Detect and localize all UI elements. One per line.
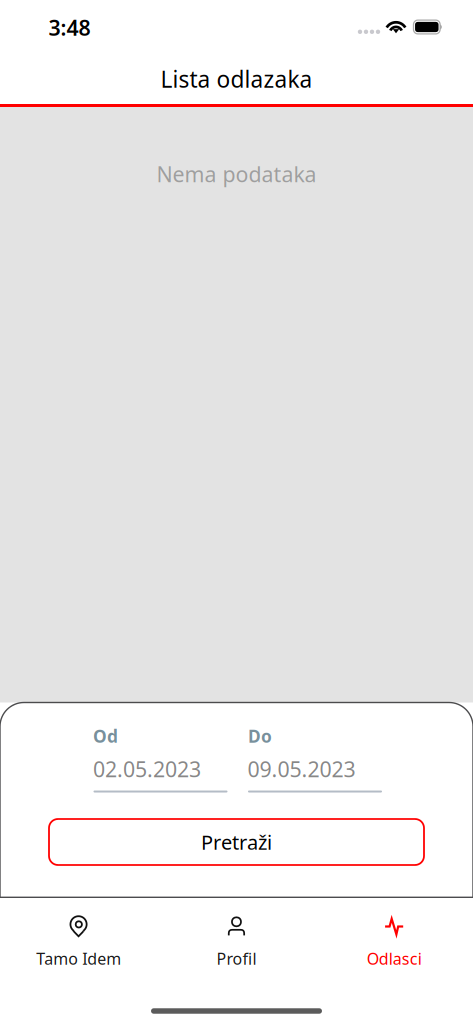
staticText: Lista odlazaka (160, 64, 312, 94)
button[interactable]: Od (93, 722, 233, 800)
staticText: 02.05.2023 (93, 755, 201, 783)
staticText: 09.05.2023 (247, 755, 355, 783)
staticText: Do (248, 724, 272, 747)
staticText: Tamo Idem (36, 948, 121, 969)
button[interactable]: Profil (158, 897, 315, 985)
button[interactable]: Do (247, 722, 387, 800)
staticText: Profil (216, 948, 256, 969)
button[interactable]: Tamo Idem (0, 897, 158, 985)
staticText: Pretraži (201, 829, 272, 855)
staticText: Odlasci (367, 948, 422, 969)
staticText: 3:48 (48, 13, 90, 42)
staticText: Nema podataka (156, 160, 316, 188)
button[interactable]: Odlasci (315, 897, 473, 985)
button[interactable]: Pretraži (49, 819, 424, 865)
staticText: Od (93, 724, 118, 747)
